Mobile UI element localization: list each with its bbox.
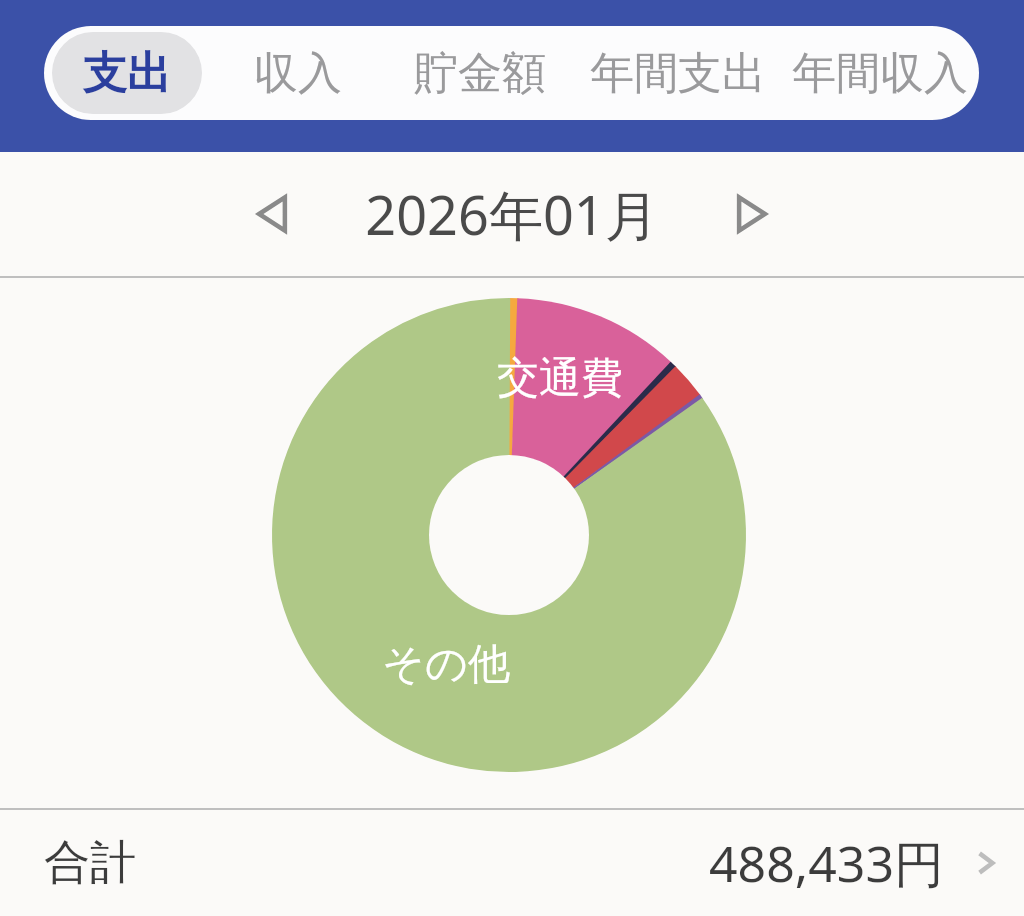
staticText: 2026年01月 bbox=[365, 177, 659, 251]
button[interactable]: 貯金額 bbox=[385, 32, 575, 114]
button[interactable]: Previous month bbox=[232, 174, 312, 254]
button[interactable]: 年間収入 bbox=[780, 32, 979, 114]
staticText: 年間支出 bbox=[590, 46, 766, 101]
button[interactable]: 合計 bbox=[0, 810, 1024, 916]
button[interactable]: Next month bbox=[712, 174, 792, 254]
staticText: その他 bbox=[382, 638, 510, 691]
button[interactable]: 年間支出 bbox=[575, 32, 780, 114]
button[interactable]: 収入 bbox=[210, 32, 385, 114]
staticText: 貯金額 bbox=[414, 46, 546, 101]
staticText: 収入 bbox=[254, 46, 342, 101]
staticText: 488,433円 bbox=[709, 829, 944, 897]
button[interactable]: 支出 bbox=[52, 32, 202, 114]
staticText: 交通費 bbox=[497, 352, 623, 405]
staticText: 支出 bbox=[83, 46, 171, 101]
staticText: 年間収入 bbox=[792, 46, 968, 101]
staticText: 合計 bbox=[44, 834, 136, 892]
